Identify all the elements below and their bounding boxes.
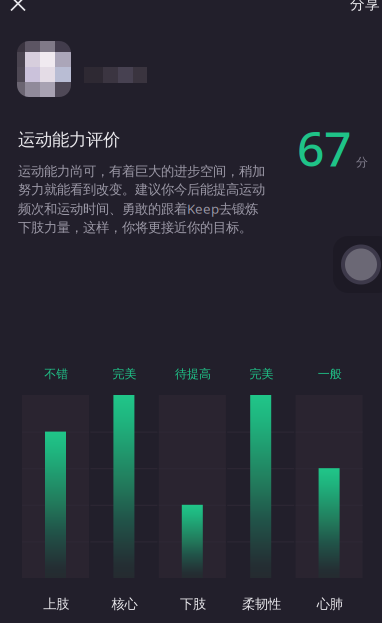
staticText: 分享 <box>350 0 380 13</box>
staticText: 完美 <box>249 367 273 381</box>
staticText: 分 <box>356 155 368 170</box>
staticText: 上肢 <box>43 596 69 612</box>
staticText: 67 <box>297 116 351 180</box>
staticText: 完美 <box>113 367 137 381</box>
staticText: 待提高 <box>175 367 211 381</box>
staticText: 运动能力尚可，有着巨大的进步空间，稍加努力就能看到改变。建议你今后能提高运动频次… <box>18 163 265 236</box>
staticText: 核心 <box>112 596 138 612</box>
button[interactable]: 分享 <box>343 0 382 15</box>
staticText: 心肺 <box>317 596 343 612</box>
button[interactable]: Close <box>3 0 33 18</box>
staticText: 一般 <box>318 367 342 381</box>
staticText: 不错 <box>44 367 68 381</box>
staticText: 运动能力评价 <box>18 129 120 150</box>
staticText: 下肢 <box>180 596 206 612</box>
staticText: 柔韧性 <box>242 596 281 612</box>
